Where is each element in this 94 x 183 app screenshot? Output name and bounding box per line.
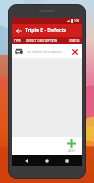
button[interactable]: no defect description xyxy=(12,44,82,58)
staticText: no defect description xyxy=(27,49,62,54)
staticText: 100 xyxy=(74,19,80,23)
staticText: STATUS xyxy=(69,39,80,43)
staticText: DEFECT DESCRIPTION xyxy=(26,39,58,43)
button[interactable]: Back xyxy=(22,156,32,166)
staticText: ADD xyxy=(68,149,75,153)
staticText: TYPE xyxy=(14,39,21,43)
button[interactable]: Add defect xyxy=(65,137,78,155)
button[interactable]: Back xyxy=(12,24,25,37)
button[interactable]: Remove defect xyxy=(70,47,79,56)
button[interactable]: Home xyxy=(42,156,52,166)
staticText: Triple E - Defects xyxy=(25,27,67,34)
button[interactable]: Recent apps xyxy=(62,156,72,166)
